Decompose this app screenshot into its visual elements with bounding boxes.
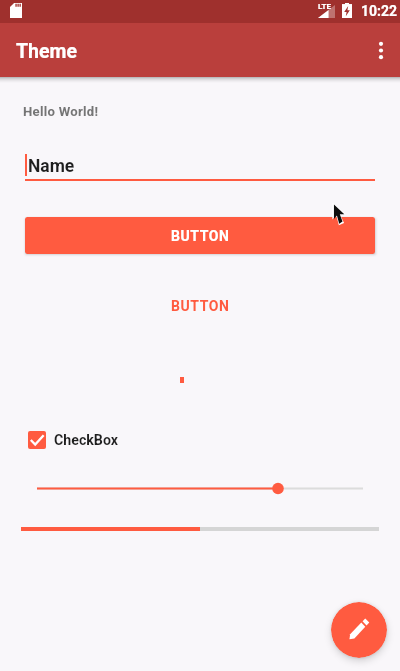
button[interactable]: Name [25, 152, 375, 182]
staticText: BUTTON [171, 298, 230, 314]
button[interactable] [0, 476, 400, 500]
button[interactable]: CheckBox [28, 426, 118, 454]
button[interactable]: BUTTON [25, 217, 375, 254]
staticText: 10:22 [361, 3, 398, 19]
button[interactable]: Edit [331, 602, 387, 658]
staticText: CheckBox [54, 432, 118, 449]
staticText: LTE [318, 2, 331, 11]
button[interactable]: BUTTON [160, 288, 241, 324]
staticText: Hello World! [23, 104, 99, 119]
staticText: Name [28, 156, 75, 177]
staticText: BUTTON [171, 228, 230, 244]
button[interactable]: More options [352, 26, 400, 74]
staticText: Theme [16, 40, 77, 63]
